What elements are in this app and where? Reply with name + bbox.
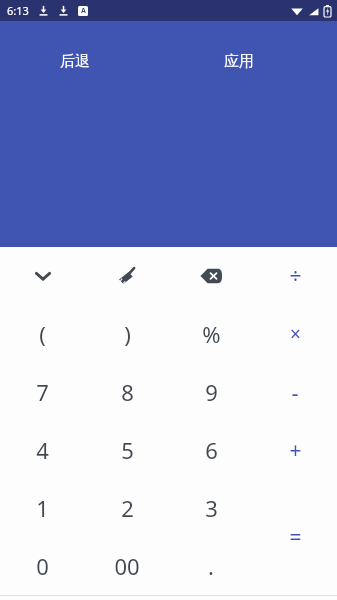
button[interactable]: 8 <box>85 363 169 421</box>
staticText: ÷ <box>289 262 302 291</box>
staticText: 0 <box>36 551 49 581</box>
button[interactable]: Collapse <box>0 247 85 305</box>
button[interactable]: ÷ <box>253 247 337 305</box>
staticText: - <box>291 377 299 407</box>
button[interactable]: 4 <box>0 421 85 479</box>
staticText: 4 <box>36 435 49 465</box>
button[interactable]: × <box>253 305 337 363</box>
staticText: ( <box>39 319 46 349</box>
button[interactable]: 7 <box>0 363 85 421</box>
button[interactable]: 00 <box>85 537 169 595</box>
staticText: = <box>289 523 302 552</box>
staticText: 3 <box>205 493 218 523</box>
button[interactable]: Backspace <box>169 247 253 305</box>
button[interactable]: 9 <box>169 363 253 421</box>
staticText: 后退 <box>60 52 90 71</box>
button[interactable]: 2 <box>85 479 169 537</box>
button[interactable]: ( <box>0 305 85 363</box>
staticText: . <box>208 551 214 581</box>
button[interactable]: 3 <box>169 479 253 537</box>
staticText: × <box>290 321 301 347</box>
staticText: 6:13 <box>7 3 29 18</box>
staticText: A <box>81 6 86 16</box>
staticText: + <box>289 436 302 465</box>
staticText: 5 <box>121 435 134 465</box>
staticText: 1 <box>36 493 49 523</box>
button[interactable]: % <box>169 305 253 363</box>
button[interactable]: + <box>253 421 337 479</box>
staticText: ) <box>124 319 131 349</box>
button[interactable]: 0 <box>0 537 85 595</box>
staticText: 00 <box>114 551 140 581</box>
staticText: 7 <box>36 377 49 407</box>
staticText: 应用 <box>224 52 254 71</box>
button[interactable]: 6 <box>169 421 253 479</box>
button[interactable]: Clear all <box>85 247 169 305</box>
button[interactable]: 5 <box>85 421 169 479</box>
staticText: 2 <box>121 493 134 523</box>
staticText: 6 <box>205 435 218 465</box>
button[interactable]: ) <box>85 305 169 363</box>
button[interactable]: 1 <box>0 479 85 537</box>
button[interactable]: 后退 <box>48 47 102 76</box>
staticText: % <box>202 319 221 349</box>
button[interactable]: 应用 <box>212 47 266 76</box>
staticText: 8 <box>121 377 134 407</box>
button[interactable]: = <box>253 479 337 595</box>
button[interactable]: - <box>253 363 337 421</box>
button[interactable]: . <box>169 537 253 595</box>
staticText: 9 <box>205 377 218 407</box>
